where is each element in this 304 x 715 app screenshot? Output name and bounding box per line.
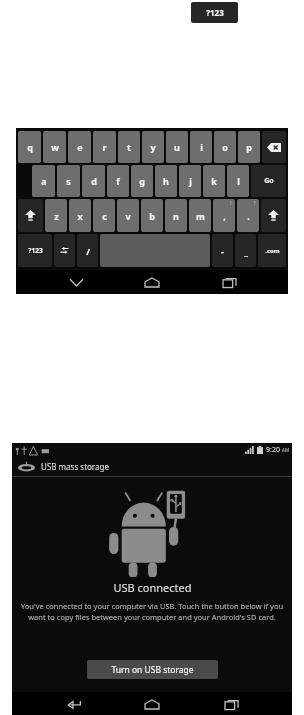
staticText: _: [244, 245, 248, 257]
staticText: h: [163, 175, 169, 187]
staticText: .: [247, 210, 250, 222]
button[interactable]: ?123: [191, 2, 238, 23]
staticText: v: [125, 210, 131, 222]
button[interactable]: Recents: [212, 272, 246, 292]
staticText: p: [246, 141, 252, 153]
button[interactable]: o: [214, 131, 236, 163]
staticText: ,: [223, 210, 226, 222]
button[interactable]: Go: [251, 165, 286, 197]
button[interactable]: Shift: [261, 199, 286, 232]
staticText: x: [77, 210, 83, 222]
staticText: Go: [264, 176, 274, 186]
button[interactable]: y: [142, 131, 164, 163]
staticText: -: [221, 245, 224, 257]
staticText: r: [102, 141, 107, 153]
staticText: c: [102, 210, 107, 222]
staticText: m: [196, 210, 205, 222]
button[interactable]: g: [131, 165, 153, 197]
button[interactable]: f: [107, 165, 129, 197]
staticText: l: [237, 175, 240, 187]
staticText: u: [174, 141, 180, 153]
button[interactable]: a: [32, 165, 55, 197]
button[interactable]: v: [117, 199, 139, 232]
button[interactable]: Back: [57, 694, 91, 714]
button[interactable]: w: [43, 131, 66, 163]
button[interactable]: Home: [135, 272, 169, 292]
button[interactable]: Back: [59, 272, 93, 292]
button[interactable]: x: [69, 199, 91, 232]
button[interactable]: ,: [213, 199, 235, 232]
button[interactable]: z: [45, 199, 67, 232]
button[interactable]: _: [235, 234, 256, 267]
button[interactable]: q: [18, 131, 41, 163]
staticText: b: [149, 210, 155, 222]
staticText: AM: [282, 447, 289, 453]
button[interactable]: i: [190, 131, 212, 163]
staticText: You've connected to your computer via US…: [20, 601, 284, 622]
button[interactable]: Recents: [214, 694, 248, 714]
button[interactable]: t: [118, 131, 140, 163]
staticText: .com: [265, 247, 280, 255]
button[interactable]: l: [227, 165, 249, 197]
staticText: f: [116, 175, 120, 187]
staticText: /: [86, 245, 90, 257]
staticText: q: [27, 141, 33, 153]
button[interactable]: k: [203, 165, 225, 197]
button[interactable]: -: [212, 234, 233, 267]
button[interactable]: r: [93, 131, 116, 163]
staticText: ?123: [206, 7, 224, 18]
button[interactable]: d: [82, 165, 105, 197]
staticText: !: [230, 200, 232, 207]
staticText: w: [51, 141, 59, 153]
staticText: k: [211, 175, 217, 187]
button[interactable]: Turn on USB storage: [87, 660, 218, 679]
staticText: o: [222, 141, 228, 153]
staticText: USB connected: [113, 580, 192, 595]
button[interactable]: s: [57, 165, 80, 197]
button[interactable]: p: [238, 131, 260, 163]
staticText: i: [200, 141, 203, 153]
staticText: d: [91, 175, 97, 187]
button[interactable]: Shift: [18, 199, 43, 232]
button[interactable]: c: [93, 199, 115, 232]
staticText: z: [54, 210, 59, 222]
staticText: USB mass storage: [41, 461, 109, 472]
button[interactable]: b: [141, 199, 163, 232]
button[interactable]: h: [155, 165, 177, 197]
staticText: y: [150, 141, 156, 153]
button[interactable]: .com: [258, 234, 286, 267]
button[interactable]: e: [68, 131, 91, 163]
staticText: ?: [253, 200, 256, 207]
button[interactable]: Settings: [54, 234, 75, 267]
button[interactable]: Home: [135, 694, 169, 714]
staticText: s: [66, 175, 71, 187]
staticText: t: [127, 141, 131, 153]
button[interactable]: m: [189, 199, 211, 232]
button[interactable]: Backspace: [262, 131, 286, 163]
button[interactable]: /: [77, 234, 98, 267]
button[interactable]: n: [165, 199, 187, 232]
staticText: a: [41, 175, 47, 187]
staticText: ?123: [28, 246, 43, 255]
button[interactable]: u: [166, 131, 188, 163]
staticText: e: [77, 141, 83, 153]
button[interactable]: j: [179, 165, 201, 197]
staticText: 9:20: [266, 445, 280, 455]
staticText: j: [189, 175, 192, 187]
staticText: Turn on USB storage: [111, 664, 194, 676]
button[interactable]: ?123: [18, 234, 52, 267]
staticText: g: [139, 175, 145, 187]
button[interactable]: .: [237, 199, 259, 232]
staticText: n: [173, 210, 179, 222]
